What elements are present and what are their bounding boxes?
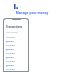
staticText: Payment: [6, 36, 16, 39]
staticText: Payment: [6, 60, 16, 63]
staticText: Manage your money: [0, 11, 64, 15]
staticText: $24.00: [6, 39, 14, 42]
staticText: This month: [6, 31, 18, 34]
staticText: $24.00: [6, 63, 14, 66]
staticText: Transactions: [6, 25, 23, 29]
staticText: $24.00: [6, 47, 14, 50]
staticText: Payment: [6, 68, 16, 71]
staticText: Payment: [6, 44, 16, 47]
staticText: Payment: [6, 52, 16, 55]
staticText: $24.00: [6, 55, 14, 58]
